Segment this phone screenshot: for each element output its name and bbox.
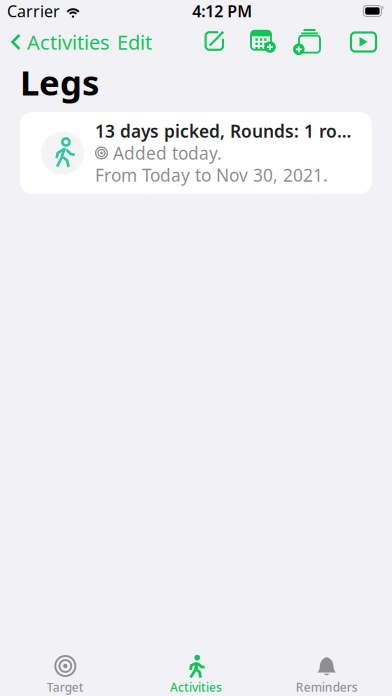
staticText: 13 days picked, Rounds: 1 rou… xyxy=(95,119,355,142)
button[interactable]: Edit xyxy=(110,21,159,63)
button[interactable]: Reminders xyxy=(261,647,392,696)
button[interactable]: Add date xyxy=(247,22,280,62)
button[interactable]: 13 days picked, Rounds: 1 rou… xyxy=(20,112,372,194)
staticText: Reminders xyxy=(296,679,358,695)
button[interactable]: Activities xyxy=(131,647,261,696)
staticText: Added today. xyxy=(113,141,222,164)
staticText: 4:12 PM xyxy=(192,0,252,22)
staticText: From Today to Nov 30, 2021. xyxy=(95,163,328,186)
button[interactable]: Activities xyxy=(0,21,110,63)
button[interactable]: Target xyxy=(0,647,131,696)
button[interactable]: Compose xyxy=(199,22,230,62)
staticText: Activities xyxy=(27,29,110,55)
staticText: Edit xyxy=(117,29,152,55)
staticText: Carrier xyxy=(7,0,60,22)
button[interactable]: Play xyxy=(347,23,380,60)
button[interactable]: Add activity xyxy=(289,20,324,64)
staticText: Legs xyxy=(20,59,99,105)
staticText: Target xyxy=(47,679,84,695)
staticText: Activities xyxy=(170,679,222,695)
